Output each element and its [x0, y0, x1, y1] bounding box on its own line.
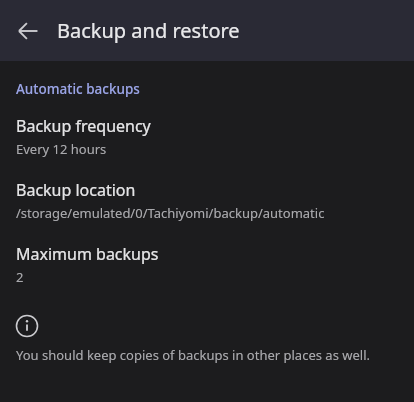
staticText: Maximum backups [16, 243, 159, 265]
staticText: You should keep copies of backups in oth… [16, 346, 370, 364]
button[interactable]: Backup frequency [0, 115, 414, 158]
other: Information [16, 315, 38, 337]
staticText: Backup and restore [57, 17, 240, 44]
staticText: Every 12 hours [16, 140, 107, 158]
staticText: /storage/emulated/0/Tachiyomi/backup/aut… [16, 204, 325, 222]
staticText: 2 [16, 268, 24, 286]
staticText: Automatic backups [16, 80, 140, 98]
staticText: Backup frequency [16, 115, 151, 137]
button[interactable]: Maximum backups [0, 243, 414, 286]
button[interactable]: Backup location [0, 179, 414, 222]
staticText: Backup location [16, 179, 136, 201]
button[interactable]: Back [10, 13, 46, 49]
